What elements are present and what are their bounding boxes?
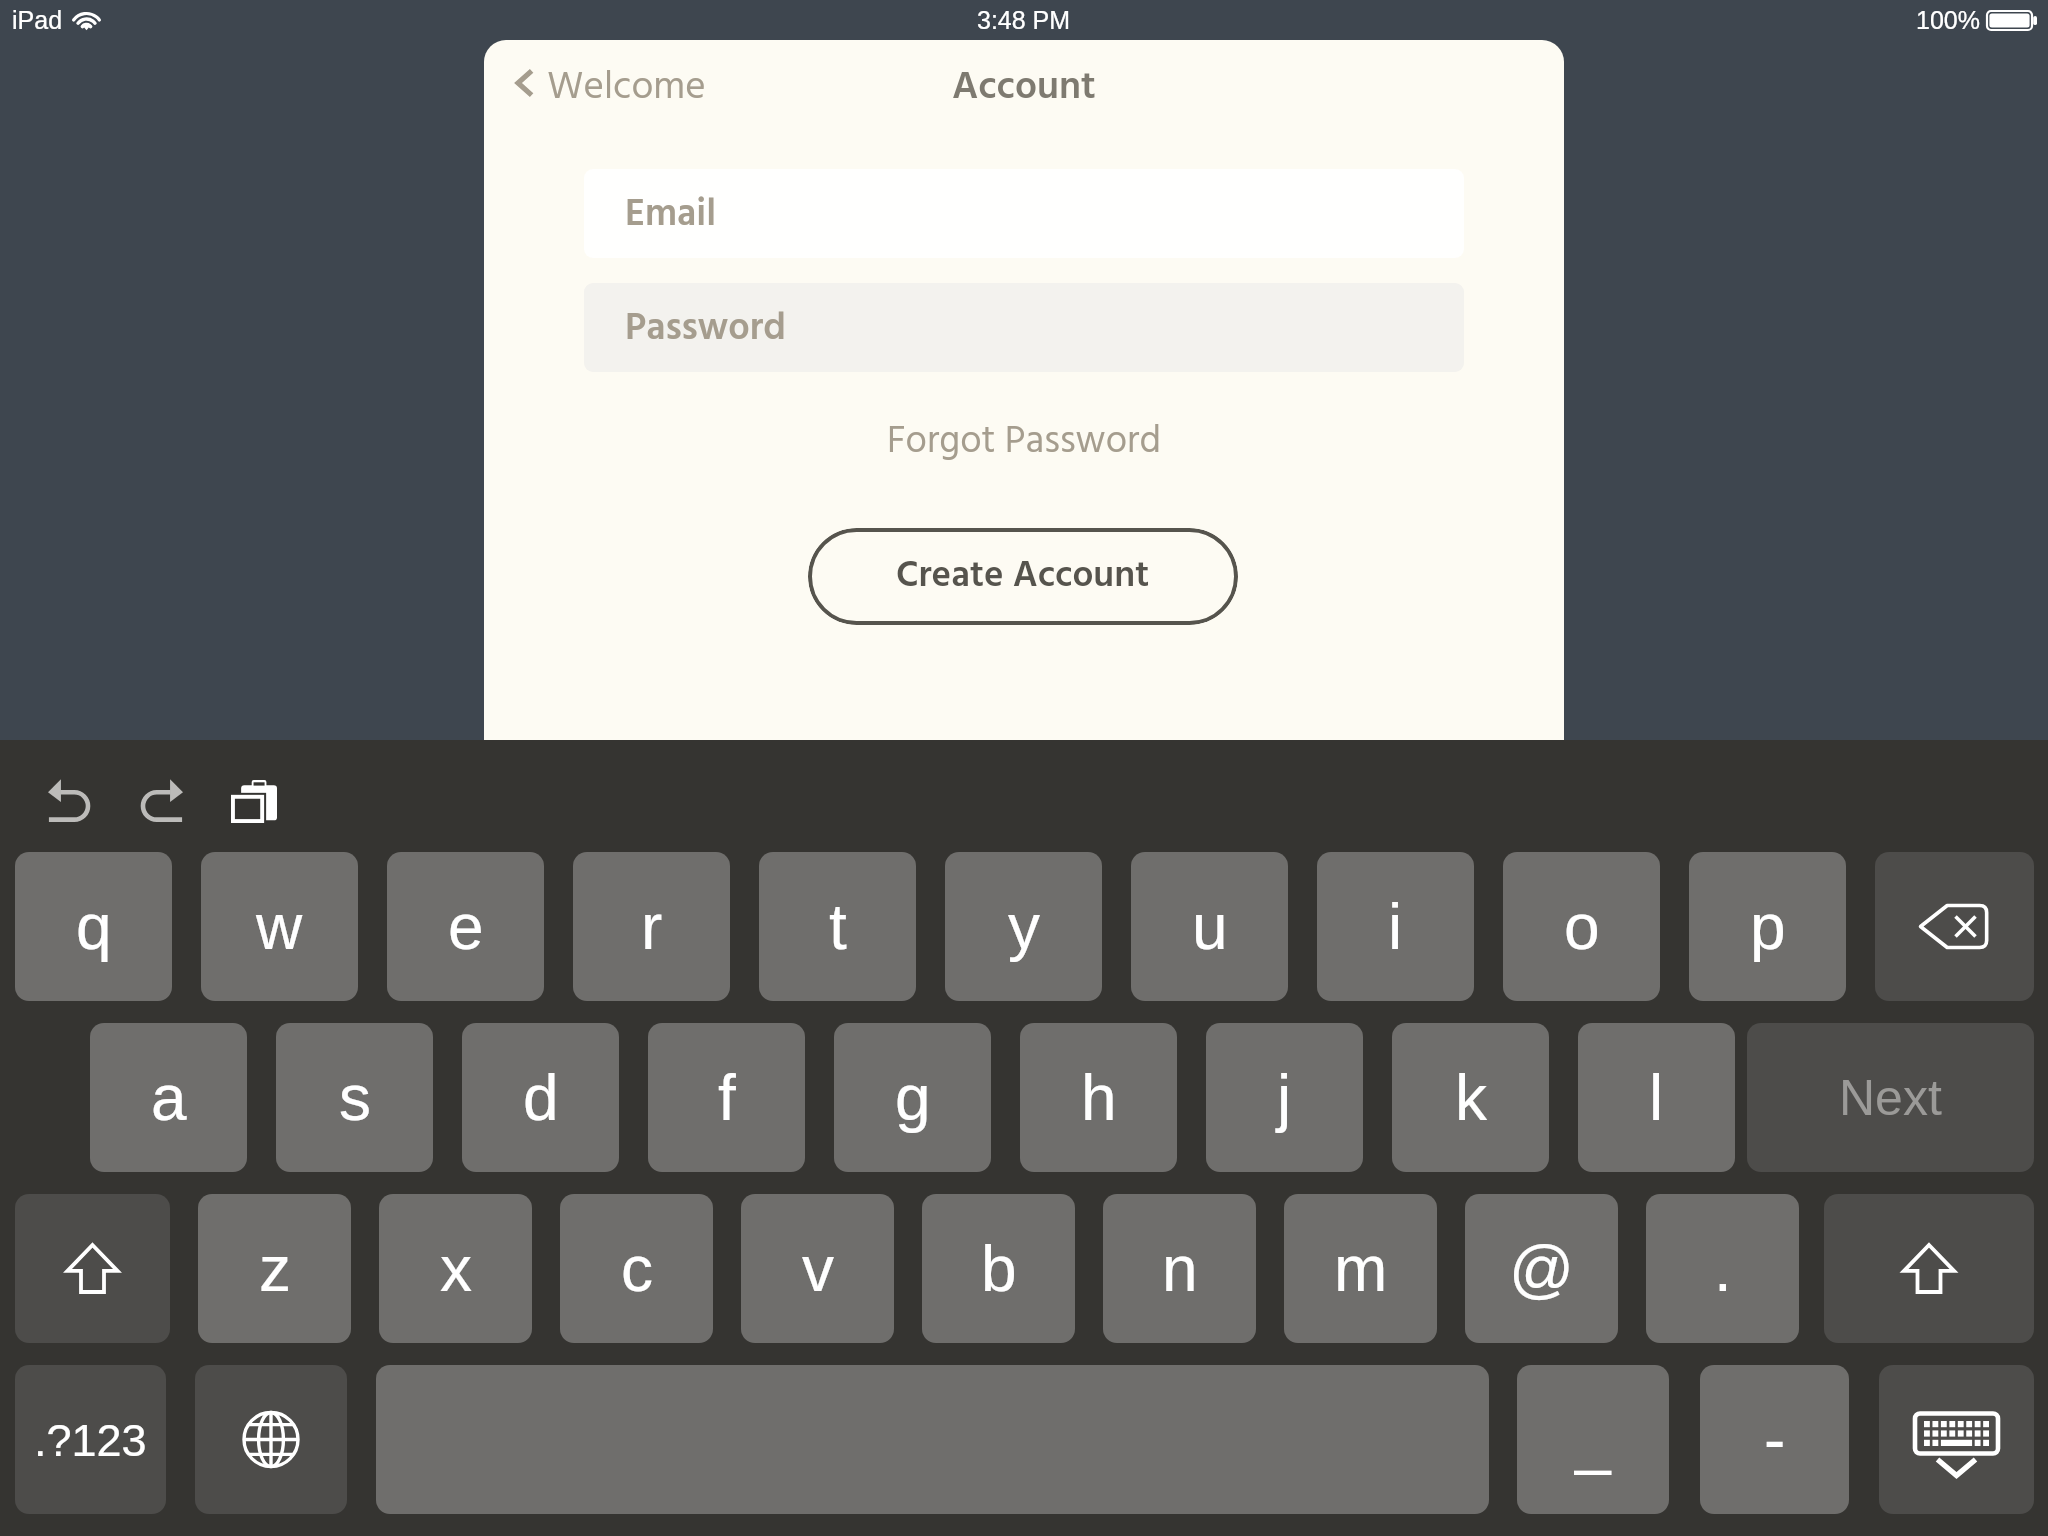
button[interactable]: m (1284, 1194, 1437, 1343)
staticText: s (339, 1062, 371, 1134)
staticText: Account (952, 57, 1096, 117)
button[interactable]: k (1392, 1023, 1549, 1172)
button[interactable]: Forgot Password (854, 410, 1194, 474)
staticText: i (1388, 891, 1403, 963)
staticText: v (802, 1233, 834, 1305)
staticText: 3:48 PM (977, 6, 1071, 34)
button[interactable]: Password (584, 283, 1464, 372)
staticText: w (256, 891, 303, 963)
button[interactable]: s (276, 1023, 433, 1172)
button[interactable]: Hide keyboard (1879, 1365, 2034, 1514)
button[interactable]: .?123 (15, 1365, 166, 1514)
staticText: z (259, 1233, 291, 1305)
staticText: m (1334, 1233, 1388, 1305)
staticText: c (621, 1233, 653, 1305)
staticText: q (76, 891, 112, 963)
staticText: 100% (1916, 6, 1980, 34)
button[interactable]: _ (1517, 1365, 1669, 1514)
staticText: j (1277, 1062, 1292, 1134)
button[interactable]: b (922, 1194, 1075, 1343)
button[interactable]: Shift (1824, 1194, 2034, 1343)
button[interactable]: u (1131, 852, 1288, 1001)
button[interactable]: l (1578, 1023, 1735, 1172)
button[interactable]: Undo (38, 766, 104, 832)
staticText: d (523, 1062, 559, 1134)
staticText: . (1714, 1233, 1732, 1305)
button[interactable]: g (834, 1023, 991, 1172)
button[interactable]: n (1103, 1194, 1256, 1343)
button[interactable]: . (1646, 1194, 1799, 1343)
button[interactable]: i (1317, 852, 1474, 1001)
staticText: a (151, 1062, 187, 1134)
button[interactable]: j (1206, 1023, 1363, 1172)
button[interactable]: Create Account (808, 528, 1238, 625)
button[interactable]: v (741, 1194, 894, 1343)
staticText: e (448, 891, 484, 963)
staticText: o (1564, 891, 1600, 963)
button[interactable]: c (560, 1194, 713, 1343)
button[interactable]: Next (1747, 1023, 2034, 1172)
staticText: x (440, 1233, 472, 1305)
staticText: g (895, 1062, 931, 1134)
button[interactable]: Paste (221, 768, 287, 834)
button[interactable]: Redo (127, 766, 193, 832)
staticText: iPad (12, 6, 63, 34)
button[interactable]: Shift (15, 1194, 170, 1343)
staticText: b (981, 1233, 1017, 1305)
button[interactable]: p (1689, 852, 1846, 1001)
button[interactable]: a (90, 1023, 247, 1172)
staticText: _ (1575, 1404, 1611, 1476)
button[interactable]: Welcome (514, 57, 706, 117)
button[interactable]: - (1700, 1365, 1849, 1514)
button[interactable]: h (1020, 1023, 1177, 1172)
button[interactable]: y (945, 852, 1102, 1001)
button[interactable]: t (759, 852, 916, 1001)
button[interactable]: o (1503, 852, 1660, 1001)
button[interactable]: w (201, 852, 358, 1001)
staticText: k (1455, 1062, 1487, 1134)
button[interactable]: r (573, 852, 730, 1001)
staticText: y (1008, 891, 1040, 963)
staticText: Next (1839, 1070, 1942, 1126)
button[interactable]: f (648, 1023, 805, 1172)
staticText: Password (625, 299, 786, 360)
staticText: p (1750, 891, 1786, 963)
button[interactable]: @ (1465, 1194, 1618, 1343)
button[interactable]: Change keyboard (195, 1365, 347, 1514)
staticText: h (1081, 1062, 1117, 1134)
staticText: Email (625, 185, 717, 246)
button[interactable]: d (462, 1023, 619, 1172)
staticText: - (1764, 1404, 1786, 1476)
button[interactable]: z (198, 1194, 351, 1343)
staticText: r (641, 891, 663, 963)
staticText: .?123 (34, 1415, 147, 1465)
staticText: Forgot Password (887, 412, 1161, 473)
staticText: l (1649, 1062, 1664, 1134)
staticText: Welcome (547, 57, 706, 117)
staticText: n (1162, 1233, 1198, 1305)
button[interactable]: Email (584, 169, 1464, 258)
button[interactable]: q (15, 852, 172, 1001)
button[interactable]: x (379, 1194, 532, 1343)
staticText: @ (1509, 1233, 1574, 1305)
staticText: Create Account (896, 547, 1150, 606)
staticText: u (1192, 891, 1228, 963)
staticText: f (718, 1062, 736, 1134)
button[interactable]: e (387, 852, 544, 1001)
button[interactable]: Backspace (1875, 852, 2034, 1001)
staticText: t (829, 891, 847, 963)
